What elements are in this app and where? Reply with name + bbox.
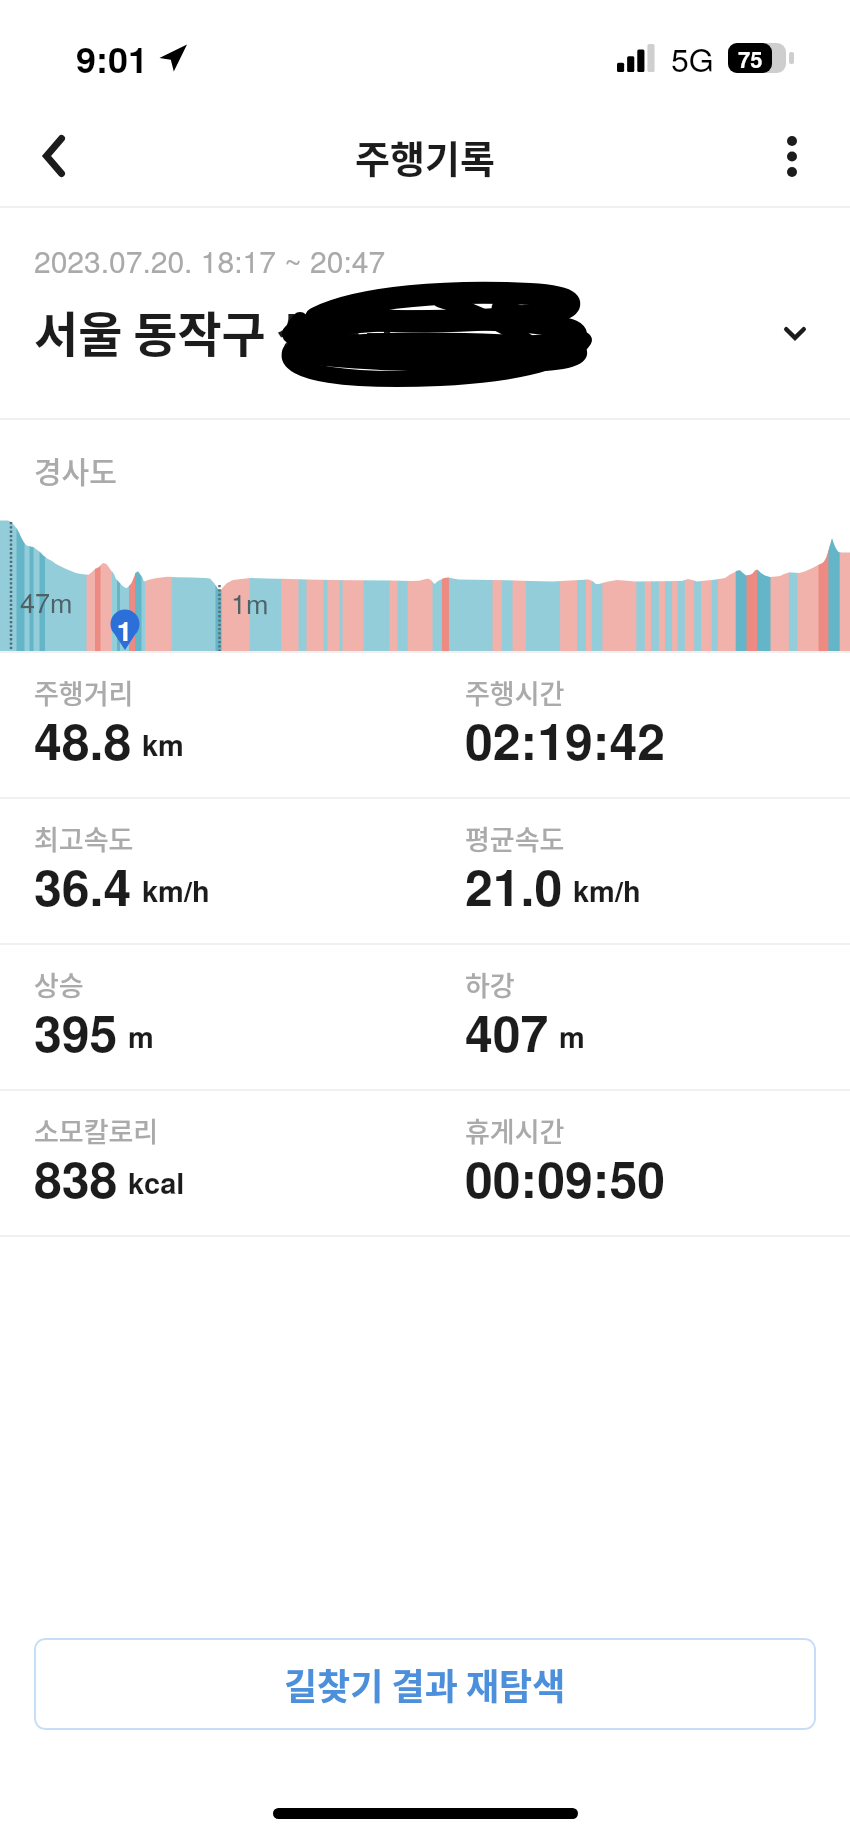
staticText: m: [559, 1015, 585, 1057]
staticText: 5G: [671, 35, 714, 81]
staticText: 소모칼로리: [34, 1111, 159, 1150]
staticText: 1: [117, 611, 133, 641]
staticText: 407: [465, 996, 549, 1068]
staticText: m: [128, 1015, 154, 1057]
staticText: 1m: [231, 583, 269, 622]
staticText: 48.8: [34, 704, 132, 776]
staticText: 00:09:50: [465, 1142, 666, 1214]
button[interactable]: Back: [18, 120, 90, 192]
staticText: 휴게시간: [465, 1111, 565, 1150]
staticText: kcal: [128, 1161, 185, 1203]
button[interactable]: 길찾기 결과 재탐색: [34, 1638, 816, 1730]
staticText: 36.4: [34, 850, 132, 922]
staticText: 838: [34, 1142, 118, 1214]
staticText: 02:19:42: [465, 704, 666, 776]
staticText: 주행시간: [465, 673, 565, 712]
staticText: km/h: [142, 869, 210, 911]
staticText: 주행기록: [355, 129, 495, 184]
button[interactable]: 2023.07.20. 18:17 ~ 20:47: [0, 208, 850, 418]
button[interactable]: More options: [756, 120, 828, 192]
staticText: 길찾기 결과 재탐색: [284, 1658, 566, 1710]
staticText: 평균속도: [465, 819, 565, 858]
staticText: 최고속도: [34, 819, 134, 858]
staticText: 경사도: [34, 448, 117, 491]
staticText: 47m: [20, 582, 73, 621]
staticText: 2023.07.20. 18:17 ~ 20:47: [34, 239, 386, 282]
staticText: 주행거리: [34, 673, 134, 712]
staticText: 395: [34, 996, 118, 1068]
staticText: 75: [738, 43, 763, 73]
staticText: 9:01: [76, 32, 149, 84]
staticText: 상승: [34, 965, 84, 1004]
staticText: 하강: [465, 965, 515, 1004]
staticText: 서울 동작구 상도동: [34, 296, 410, 366]
staticText: 21.0: [465, 850, 563, 922]
staticText: km: [142, 723, 184, 765]
staticText: km/h: [573, 869, 641, 911]
